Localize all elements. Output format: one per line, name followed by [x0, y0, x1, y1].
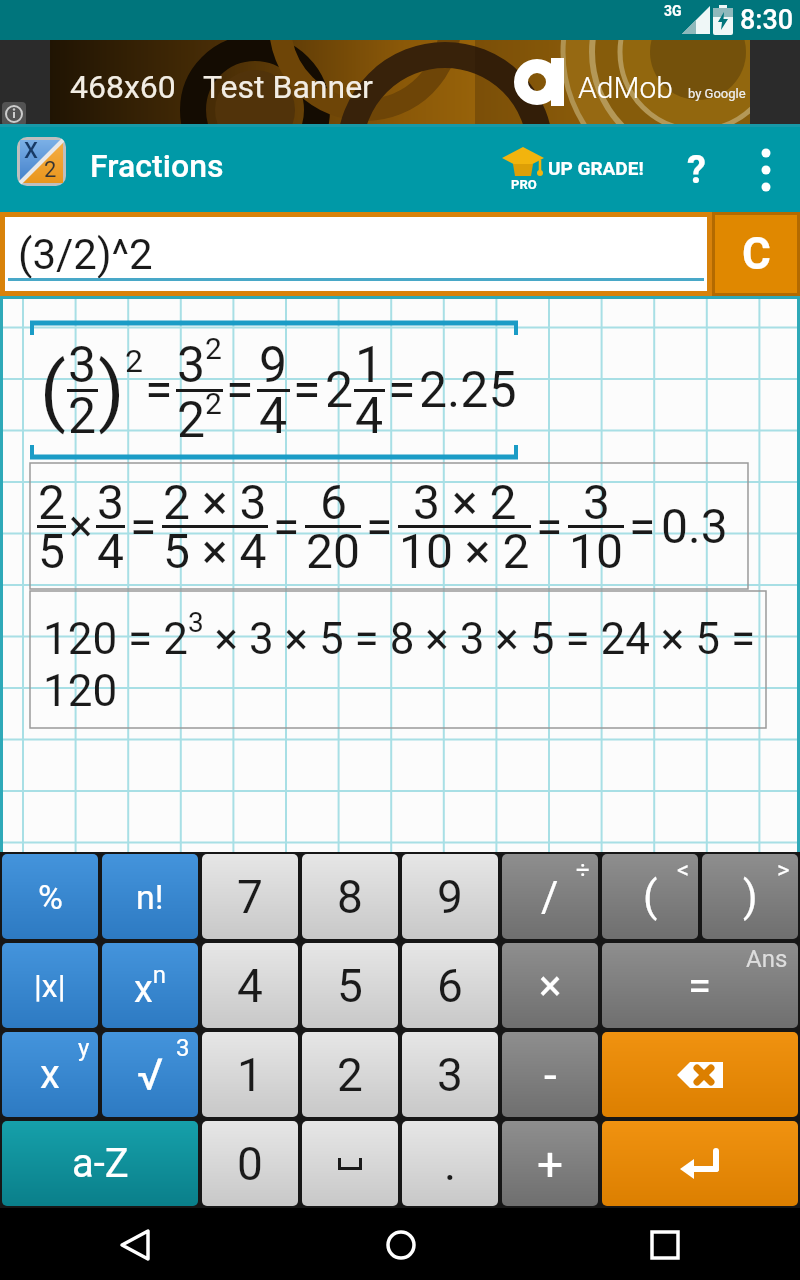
button[interactable]: ?: [668, 142, 724, 198]
button[interactable]: 3: [402, 1032, 498, 1117]
staticText: /: [541, 872, 559, 921]
staticText: 6: [320, 474, 347, 530]
staticText: +: [537, 1137, 564, 1191]
button[interactable]: xn: [102, 943, 198, 1028]
button[interactable]: .: [402, 1121, 498, 1206]
staticText: AdMob: [578, 70, 673, 105]
staticText: 22: [177, 386, 222, 450]
staticText: 3: [583, 474, 610, 530]
staticText: 3: [176, 1034, 190, 1062]
staticText: 120: [43, 665, 118, 717]
staticText: 3 × 2: [413, 474, 517, 530]
staticText: y: [78, 1034, 90, 1062]
button[interactable]: /: [502, 854, 598, 939]
staticText: xn: [134, 961, 167, 1011]
button[interactable]: -: [502, 1032, 598, 1117]
staticText: 4: [97, 523, 124, 579]
button[interactable]: |x|: [2, 943, 98, 1028]
staticText: by Google: [688, 86, 746, 101]
button[interactable]: [386, 1230, 416, 1260]
staticText: 1: [355, 336, 384, 395]
staticText: =: [130, 498, 157, 554]
staticText: 0: [237, 1137, 263, 1191]
button[interactable]: x: [2, 1032, 98, 1117]
staticText: 6: [437, 959, 463, 1013]
staticText: 468x60: [70, 68, 176, 106]
staticText: X: [24, 138, 38, 164]
staticText: 20: [306, 523, 360, 579]
button[interactable]: =: [602, 943, 798, 1028]
staticText: =: [226, 361, 254, 420]
staticText: -: [544, 1048, 557, 1102]
button[interactable]: 8: [302, 854, 398, 939]
staticText: ÷: [576, 856, 590, 884]
staticText: 2: [68, 387, 97, 446]
button[interactable]: 5: [302, 943, 398, 1028]
staticText: =: [688, 961, 712, 1010]
button[interactable]: 2: [302, 1032, 398, 1117]
button[interactable]: 468x60: [0, 40, 800, 127]
button[interactable]: √: [102, 1032, 198, 1117]
staticText: 3: [68, 336, 97, 395]
staticText: 2: [337, 1048, 363, 1102]
button[interactable]: [120, 1230, 150, 1260]
staticText: 2: [125, 342, 142, 380]
button[interactable]: %: [2, 854, 98, 939]
button[interactable]: 9: [402, 854, 498, 939]
staticText: UP GRADE!: [548, 157, 644, 179]
button[interactable]: ×: [502, 943, 598, 1028]
staticText: 9: [259, 336, 288, 395]
staticText: =: [629, 498, 656, 554]
staticText: =: [388, 361, 416, 420]
staticText: ): [743, 872, 758, 921]
staticText: (: [643, 872, 658, 921]
staticText: 9: [437, 870, 463, 924]
staticText: PRO: [511, 177, 537, 192]
staticText: 4: [355, 387, 384, 446]
button[interactable]: (: [602, 854, 698, 939]
staticText: C: [742, 228, 771, 280]
staticText: =: [293, 361, 321, 420]
button[interactable]: [302, 1121, 398, 1206]
staticText: Test Banner: [203, 68, 373, 106]
button[interactable]: 6: [402, 943, 498, 1028]
staticText: 32: [177, 331, 222, 395]
staticText: 10: [569, 523, 623, 579]
button[interactable]: a-Z: [2, 1121, 198, 1206]
button[interactable]: 0: [202, 1121, 298, 1206]
button[interactable]: n!: [102, 854, 198, 939]
button[interactable]: ): [702, 854, 798, 939]
staticText: 2 × 3: [163, 474, 267, 530]
staticText: 3: [97, 474, 124, 530]
staticText: ×: [69, 500, 93, 552]
staticText: 4: [259, 387, 288, 446]
staticText: >: [777, 856, 790, 884]
staticText: ×: [539, 961, 562, 1010]
staticText: √: [137, 1049, 164, 1101]
button[interactable]: 4: [202, 943, 298, 1028]
button[interactable]: [602, 1032, 798, 1117]
staticText: 3: [437, 1048, 463, 1102]
staticText: 5 × 4: [163, 523, 267, 579]
button[interactable]: [650, 1230, 680, 1260]
staticText: 120 = 23 × 3 × 5 = 8 × 3 × 5 = 24 × 5 =: [43, 606, 756, 665]
staticText: (: [40, 346, 67, 435]
staticText: 2: [38, 474, 65, 530]
button[interactable]: +: [502, 1121, 598, 1206]
staticText: 0.3: [661, 498, 728, 554]
staticText: 3G: [664, 3, 682, 19]
staticText: ?: [687, 148, 706, 193]
button[interactable]: PRO: [498, 145, 648, 197]
button[interactable]: [740, 142, 792, 198]
staticText: 4: [237, 959, 263, 1013]
staticText: 10 × 2: [399, 523, 530, 579]
button[interactable]: 7: [202, 854, 298, 939]
staticText: =: [366, 498, 393, 554]
staticText: =: [145, 361, 173, 420]
button[interactable]: C: [712, 212, 800, 296]
button[interactable]: [602, 1121, 798, 1206]
staticText: ): [98, 346, 125, 435]
button[interactable]: 1: [202, 1032, 298, 1117]
staticText: 5: [38, 523, 65, 579]
staticText: 8: [337, 870, 363, 924]
